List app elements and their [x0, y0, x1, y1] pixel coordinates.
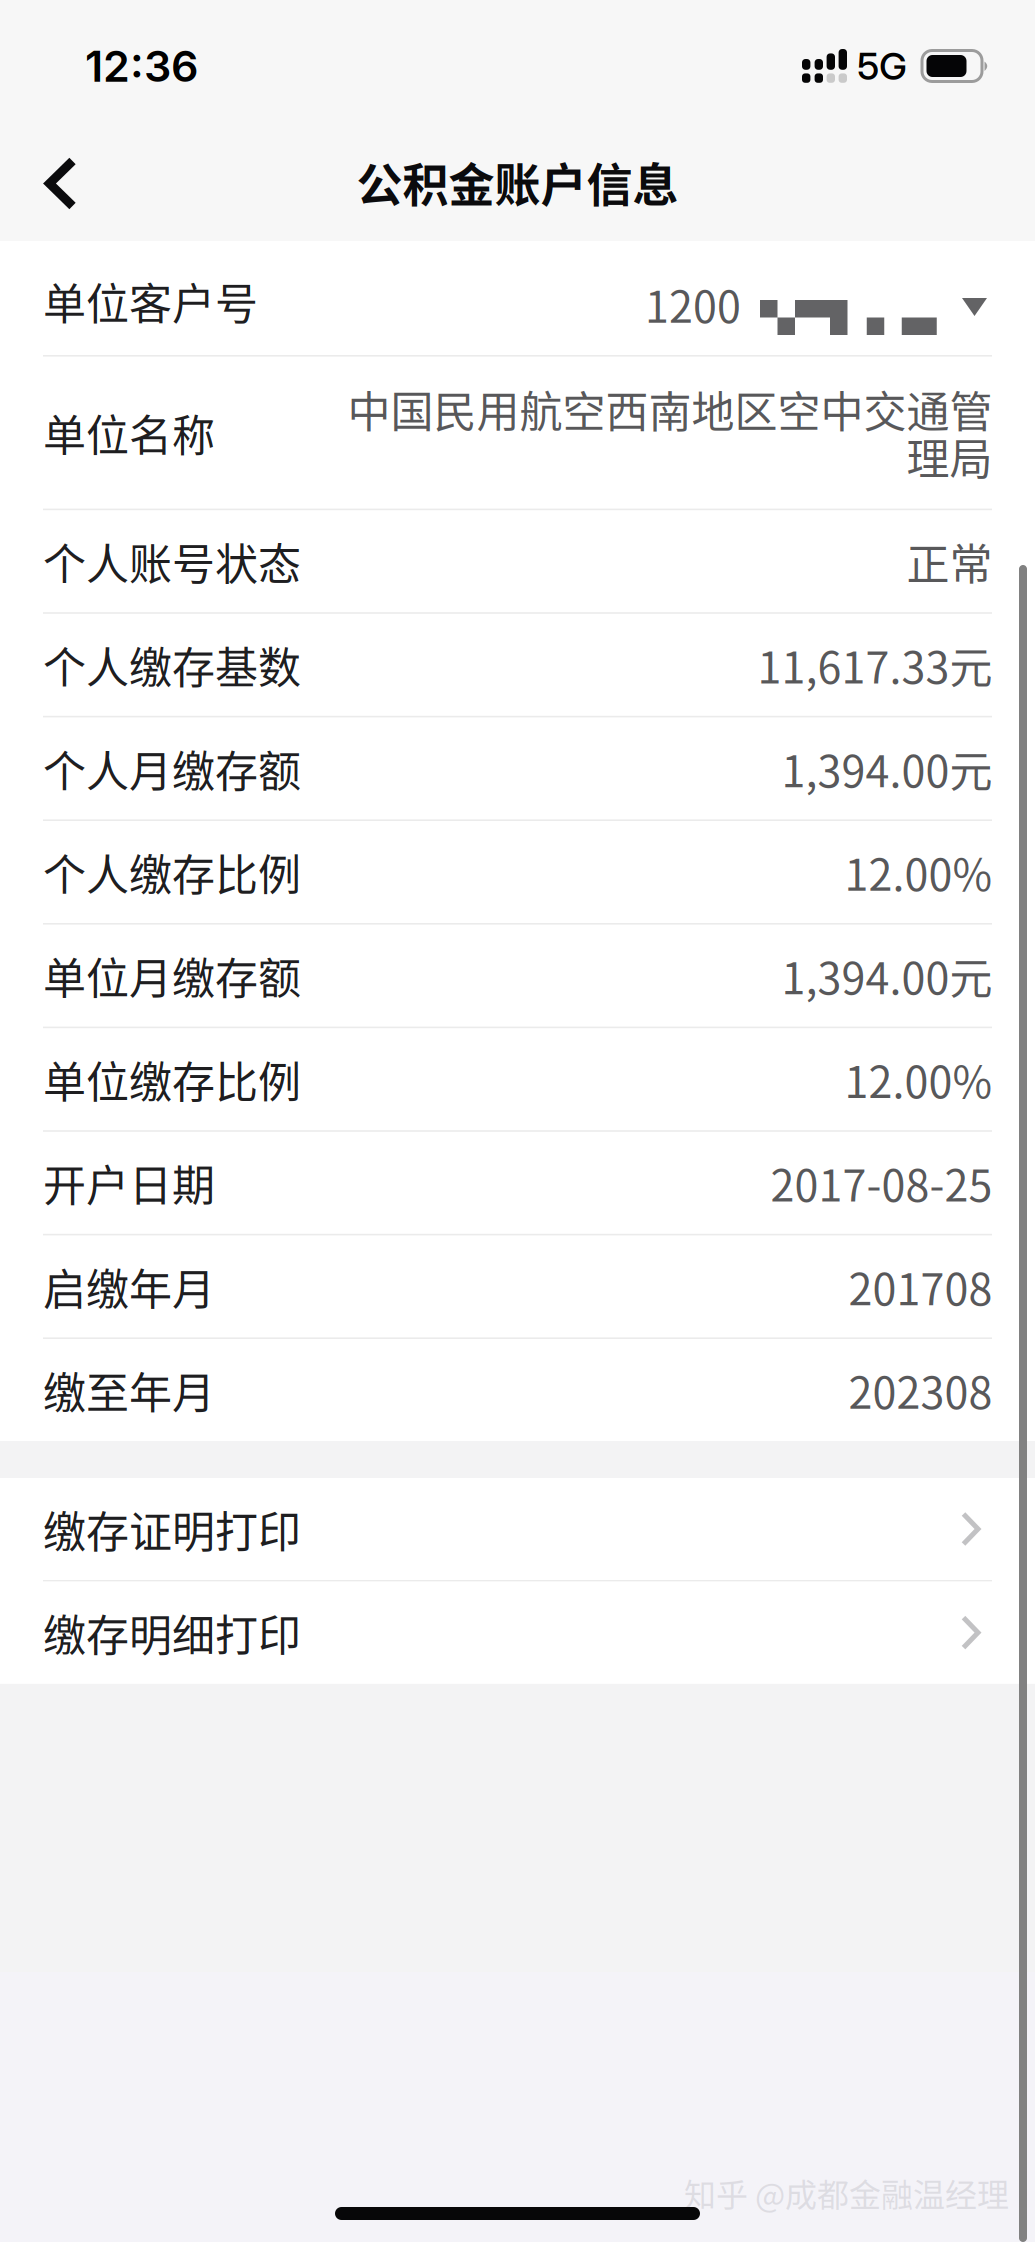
staticText: 1,394.00元 — [781, 737, 992, 800]
staticText: 缴至年月 — [43, 1359, 215, 1421]
staticText: 开户日期 — [43, 1152, 215, 1214]
button[interactable]: Back — [0, 122, 109, 241]
button[interactable]: 单位客户号 — [0, 241, 1035, 355]
staticText: 单位名称 — [43, 401, 215, 464]
staticText: 个人缴存比例 — [43, 841, 301, 903]
staticText: 5G — [857, 43, 907, 89]
button[interactable]: 缴存证明打印 — [0, 1478, 1035, 1580]
staticText: 中国民用航空西南地区空中交通管理局 — [347, 378, 992, 487]
staticText: 201708 — [848, 1255, 992, 1318]
button[interactable]: 缴存明细打印 — [0, 1582, 1035, 1684]
staticText: 1200 — [645, 273, 741, 335]
staticText: 缴存明细打印 — [43, 1601, 301, 1664]
staticText: 知乎 @成都金融温经理 — [684, 2170, 1009, 2216]
staticText: 个人月缴存额 — [43, 737, 301, 800]
staticText: 202308 — [848, 1359, 992, 1421]
staticText: 单位月缴存额 — [43, 944, 301, 1007]
staticText: 正常 — [906, 530, 992, 592]
staticText: 12.00% — [844, 841, 992, 903]
staticText: 11,617.33元 — [757, 634, 992, 696]
staticText: 单位缴存比例 — [43, 1048, 301, 1110]
staticText: 公积金账户信息 — [356, 148, 678, 215]
staticText: 启缴年月 — [43, 1255, 215, 1318]
staticText: 12:36 — [85, 40, 199, 92]
staticText: 缴存证明打印 — [43, 1498, 301, 1560]
staticText: 个人账号状态 — [43, 530, 301, 592]
staticText: 1,394.00元 — [781, 944, 992, 1007]
staticText: 2017-08-25 — [770, 1152, 992, 1214]
staticText: 12.00% — [844, 1048, 992, 1110]
staticText: 单位客户号 — [43, 270, 258, 332]
staticText: 个人缴存基数 — [43, 634, 301, 696]
